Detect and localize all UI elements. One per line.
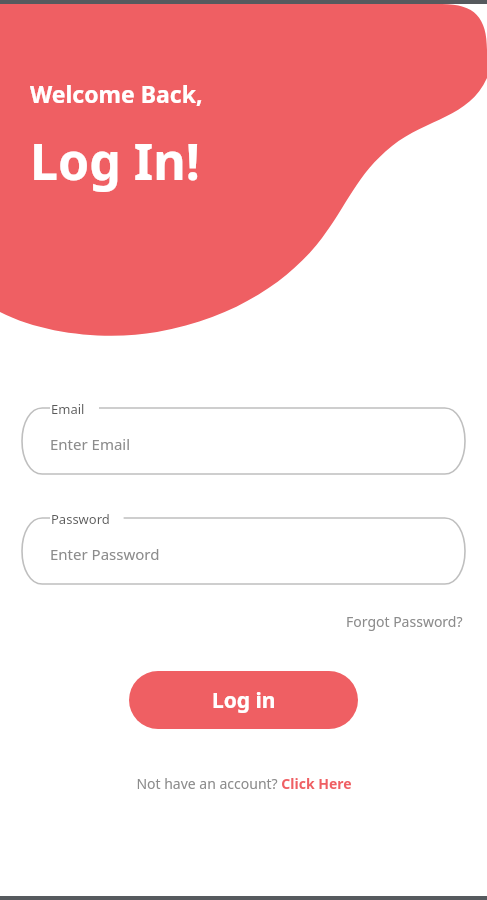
button[interactable]: Log in — [129, 671, 358, 729]
staticText: Not have an account? Click Here — [136, 774, 352, 793]
staticText: Password — [51, 510, 110, 528]
staticText: Welcome Back, — [30, 78, 203, 109]
button[interactable]: Forgot Password? — [344, 610, 465, 633]
button[interactable]: Email — [22, 400, 465, 476]
button[interactable]: Not have an account? Click Here — [132, 771, 356, 796]
staticText: Enter Password — [50, 544, 160, 564]
staticText: Log In! — [30, 127, 200, 195]
staticText: Forgot Password? — [346, 612, 463, 631]
staticText: Enter Email — [50, 434, 131, 454]
button[interactable]: Password — [22, 510, 465, 586]
staticText: Log in — [212, 686, 276, 715]
staticText: Email — [51, 400, 85, 418]
